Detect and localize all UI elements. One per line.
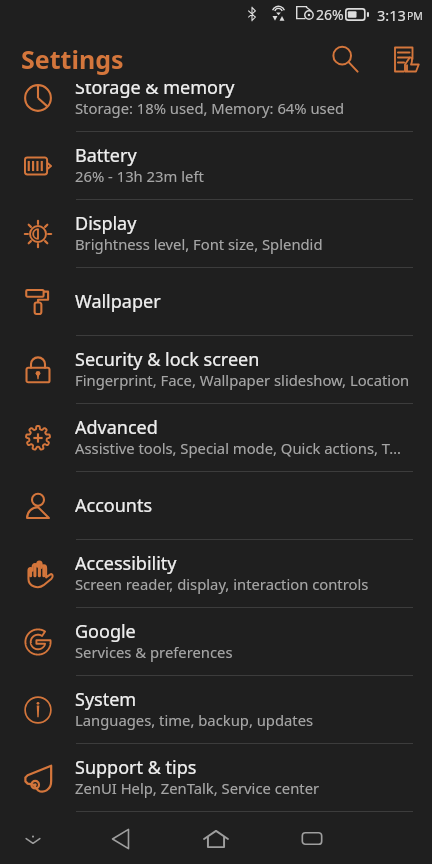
staticText: Storage: 18% used, Memory: 64% used <box>75 98 345 118</box>
button[interactable]: Display <box>0 200 432 268</box>
staticText: 3:13 <box>377 5 406 25</box>
staticText: Languages, time, backup, updates <box>75 710 314 730</box>
staticText: Brightness level, Font size, Splendid <box>75 234 323 254</box>
button[interactable]: Search <box>321 36 369 84</box>
staticText: Advanced <box>75 415 158 440</box>
button[interactable]: Hide navigation bar <box>0 813 66 864</box>
staticText: Security & lock screen <box>75 347 260 372</box>
staticText: Storage & memory <box>75 84 235 100</box>
button[interactable]: Accessibility <box>0 540 432 608</box>
staticText: Google <box>75 619 136 644</box>
button[interactable]: Security & lock screen <box>0 336 432 404</box>
staticText: Wallpaper <box>75 289 161 314</box>
button[interactable]: Back <box>90 813 150 864</box>
staticText: PM <box>407 9 423 23</box>
button[interactable]: Battery <box>0 132 432 200</box>
button[interactable]: Accounts <box>0 472 432 540</box>
staticText: Services & preferences <box>75 642 233 662</box>
staticText: Screen reader, display, interaction cont… <box>75 574 369 594</box>
staticText: ZenUI Help, ZenTalk, Service center <box>75 778 320 798</box>
button[interactable]: Recent apps <box>282 813 342 864</box>
staticText: Display <box>75 211 137 236</box>
button[interactable]: Advanced <box>0 404 432 472</box>
staticText: Assistive tools, Special mode, Quick act… <box>75 438 401 458</box>
button[interactable]: Send feedback <box>381 36 429 84</box>
staticText: 26% <box>316 5 344 24</box>
button[interactable]: Storage & memory <box>0 84 432 132</box>
button[interactable]: Wallpaper <box>0 268 432 336</box>
button[interactable]: Home <box>186 813 246 864</box>
staticText: System <box>75 687 137 712</box>
button[interactable]: System <box>0 676 432 744</box>
staticText: Battery <box>75 143 137 168</box>
staticText: Settings <box>21 42 124 76</box>
button[interactable]: Google <box>0 608 432 676</box>
staticText: Fingerprint, Face, Wallpaper slideshow, … <box>75 370 410 390</box>
staticText: Accessibility <box>75 551 177 576</box>
staticText: Accounts <box>75 493 153 518</box>
staticText: Support & tips <box>75 755 197 780</box>
button[interactable]: Support & tips <box>0 744 432 812</box>
staticText: 26% - 13h 23m left <box>75 166 204 186</box>
